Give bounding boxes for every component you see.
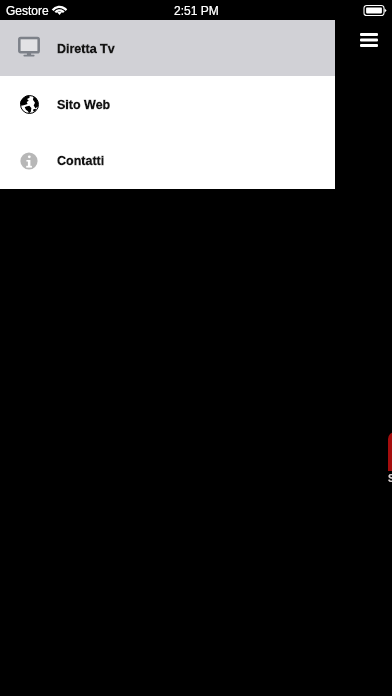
staticText: 2:51 PM [174, 4, 219, 17]
button[interactable]: Close navigation menu [0, 0, 392, 696]
button[interactable]: Contatti [0, 132, 335, 188]
staticText: Diretta Tv [57, 42, 115, 56]
staticText: Sport [388, 473, 392, 484]
button[interactable]: Sito Web [0, 76, 335, 132]
button[interactable]: Diretta Tv [0, 20, 335, 76]
staticText: Sito Web [57, 98, 111, 112]
button[interactable]: Open navigation menu [345, 18, 391, 62]
staticText: Contatti [57, 154, 105, 168]
staticText: Gestore [6, 4, 49, 17]
button[interactable]: Sport [388, 432, 392, 484]
